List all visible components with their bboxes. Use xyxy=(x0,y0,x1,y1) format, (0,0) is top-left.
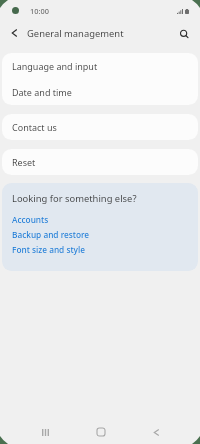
staticText: General management xyxy=(27,27,124,40)
staticText: Backup and restore xyxy=(12,229,90,240)
button[interactable]: Navigate up xyxy=(3,22,26,44)
staticText: Font size and style xyxy=(12,244,85,255)
button[interactable]: Contact us xyxy=(2,114,198,140)
staticText: Accounts xyxy=(12,214,49,225)
staticText: Looking for something else? xyxy=(12,192,137,205)
staticText: Language and input xyxy=(12,60,98,72)
button[interactable]: Accounts xyxy=(12,214,49,225)
button[interactable]: Recent apps xyxy=(34,421,56,443)
button[interactable]: Search xyxy=(173,24,196,46)
button[interactable]: Reset xyxy=(2,149,198,175)
button[interactable]: Home xyxy=(90,421,112,443)
button[interactable]: Back xyxy=(145,421,167,443)
staticText: Date and time xyxy=(12,86,72,98)
button[interactable]: Font size and style xyxy=(12,244,85,255)
staticText: Contact us xyxy=(12,121,57,133)
staticText: 10:00 xyxy=(30,6,49,16)
button[interactable]: Date and time xyxy=(2,79,198,105)
button[interactable]: Language and input xyxy=(2,53,198,79)
button[interactable]: Backup and restore xyxy=(12,229,90,240)
staticText: Reset xyxy=(12,156,36,168)
